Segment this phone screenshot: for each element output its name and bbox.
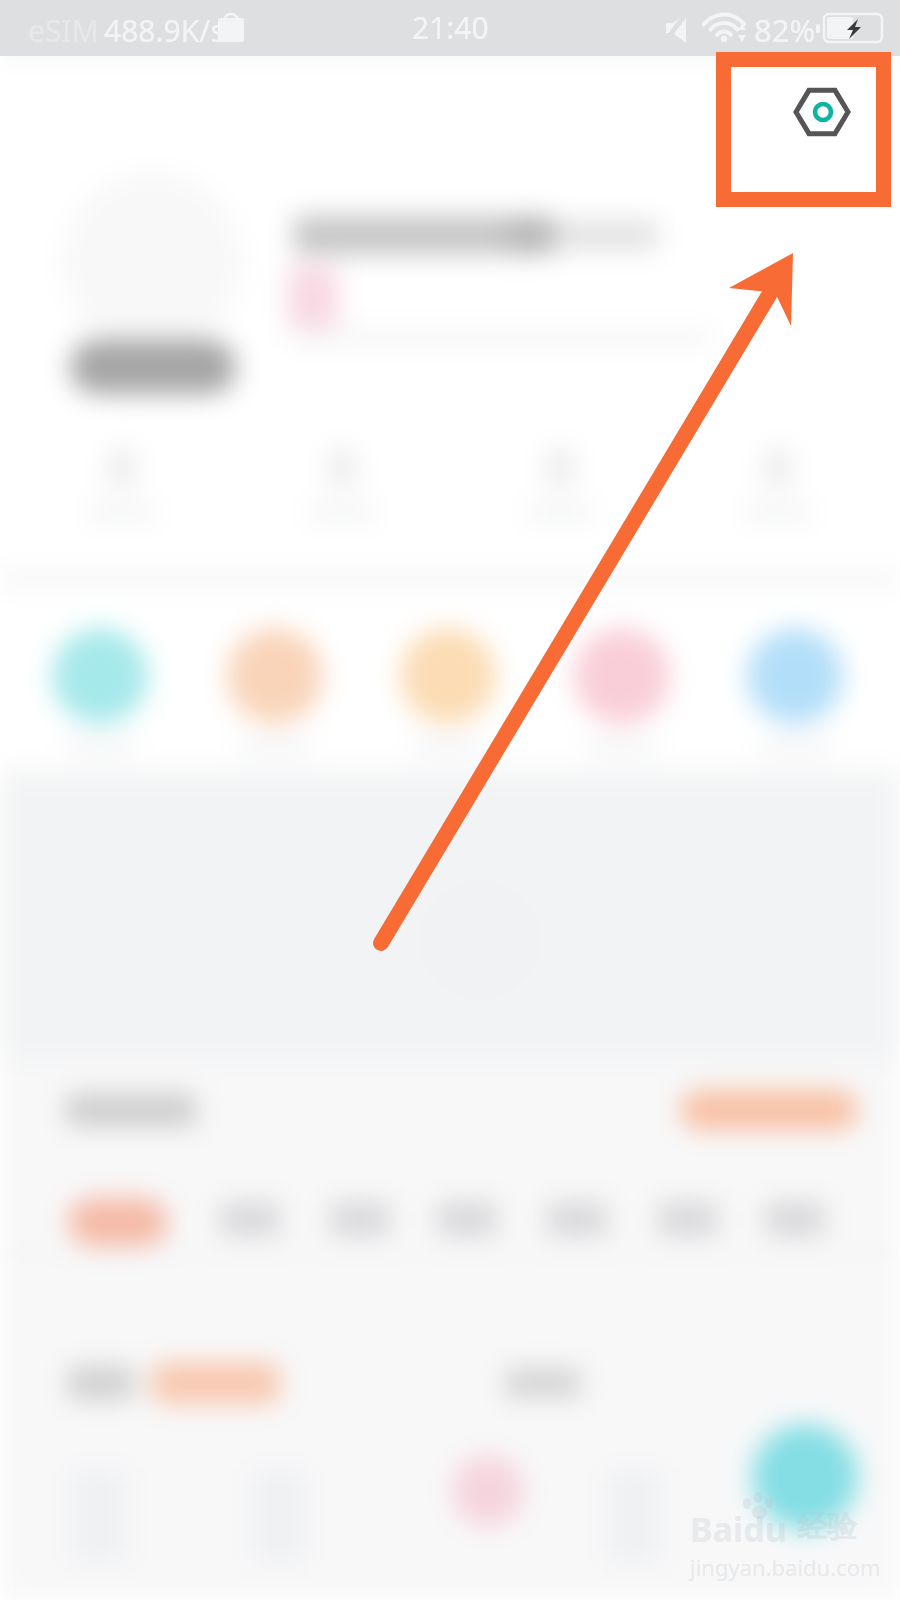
staticText: Baidu [690, 1506, 787, 1552]
staticText: 488.9K/s [104, 10, 225, 51]
staticText: 经验 [797, 1508, 857, 1546]
staticText: 21:40 [412, 7, 489, 48]
button[interactable]: Settings [786, 76, 858, 148]
staticText: eSIM [28, 10, 99, 51]
staticText: jingyan.baidu.com [690, 1552, 881, 1582]
staticText: 82% [754, 9, 816, 51]
